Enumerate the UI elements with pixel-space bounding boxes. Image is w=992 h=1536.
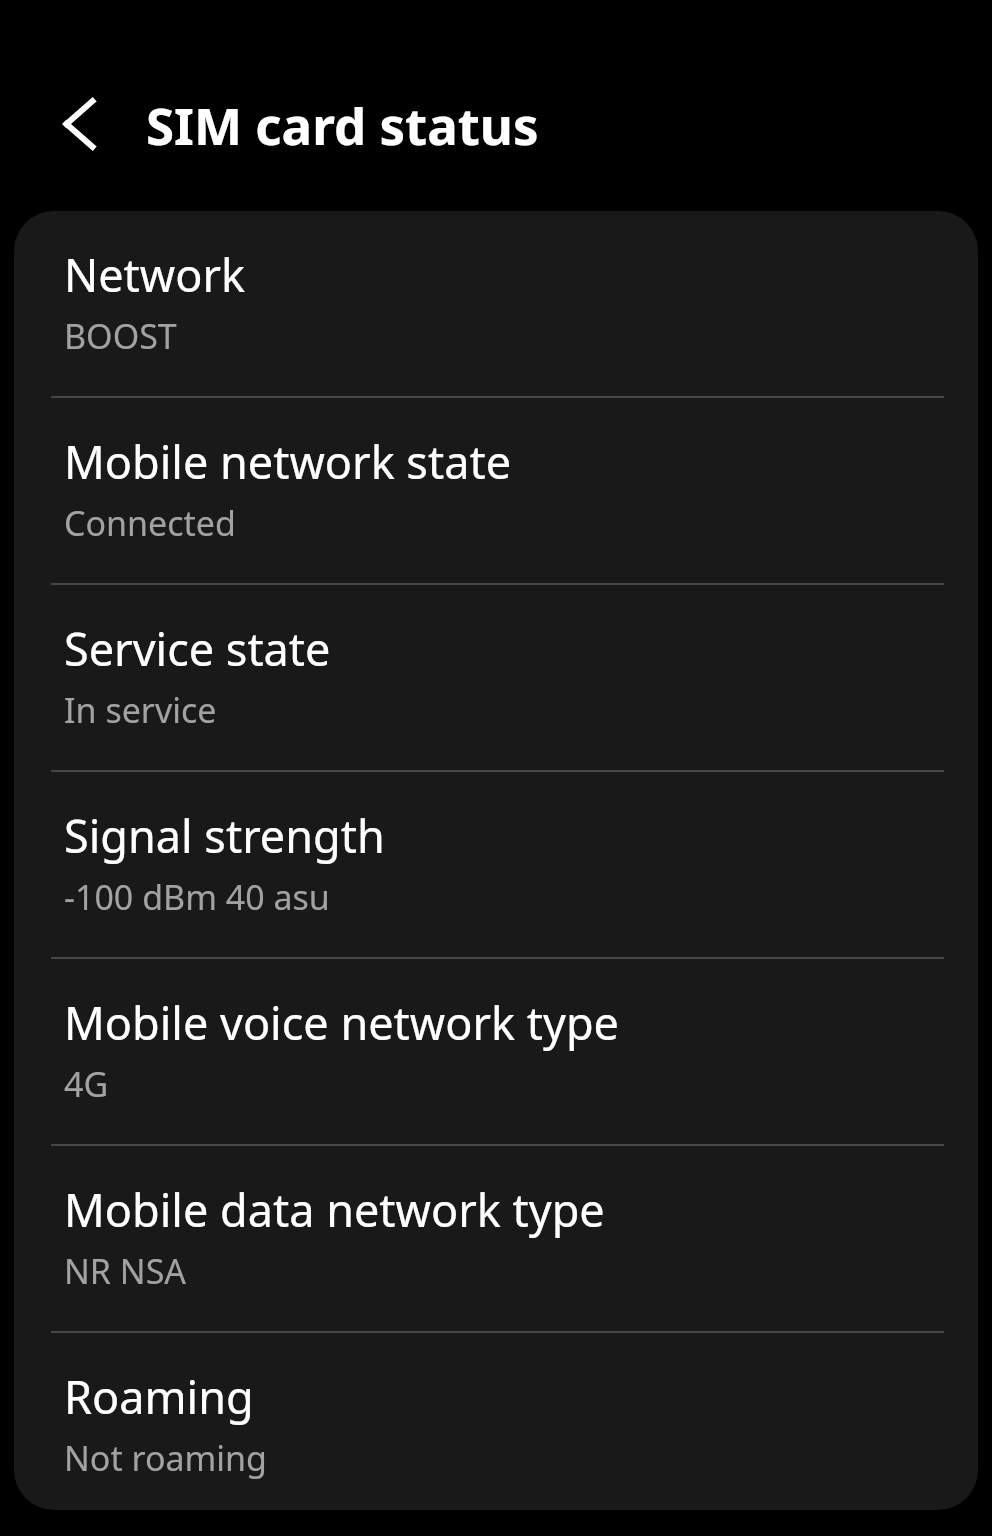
staticText: Network (64, 244, 246, 305)
staticText: Connected (64, 500, 236, 546)
staticText: Roaming (64, 1366, 254, 1427)
button[interactable]: Mobile network state (14, 398, 978, 583)
button[interactable]: Network (14, 211, 978, 396)
staticText: -100 dBm 40 asu (64, 874, 330, 920)
staticText: Not roaming (64, 1435, 268, 1481)
button[interactable]: Signal strength (14, 772, 978, 957)
staticText: 4G (64, 1061, 109, 1107)
staticText: Service state (64, 618, 331, 679)
button[interactable]: Back (32, 76, 128, 172)
staticText: Signal strength (64, 805, 385, 866)
staticText: NR NSA (64, 1248, 187, 1294)
staticText: In service (64, 687, 217, 733)
staticText: SIM card status (146, 90, 539, 159)
staticText: Mobile voice network type (64, 992, 619, 1053)
staticText: Mobile network state (64, 431, 512, 492)
button[interactable]: Mobile data network type (14, 1146, 978, 1331)
button[interactable]: Mobile voice network type (14, 959, 978, 1144)
button[interactable]: Service state (14, 585, 978, 770)
button[interactable]: Roaming (14, 1333, 978, 1510)
staticText: BOOST (64, 313, 177, 359)
staticText: Mobile data network type (64, 1179, 605, 1240)
